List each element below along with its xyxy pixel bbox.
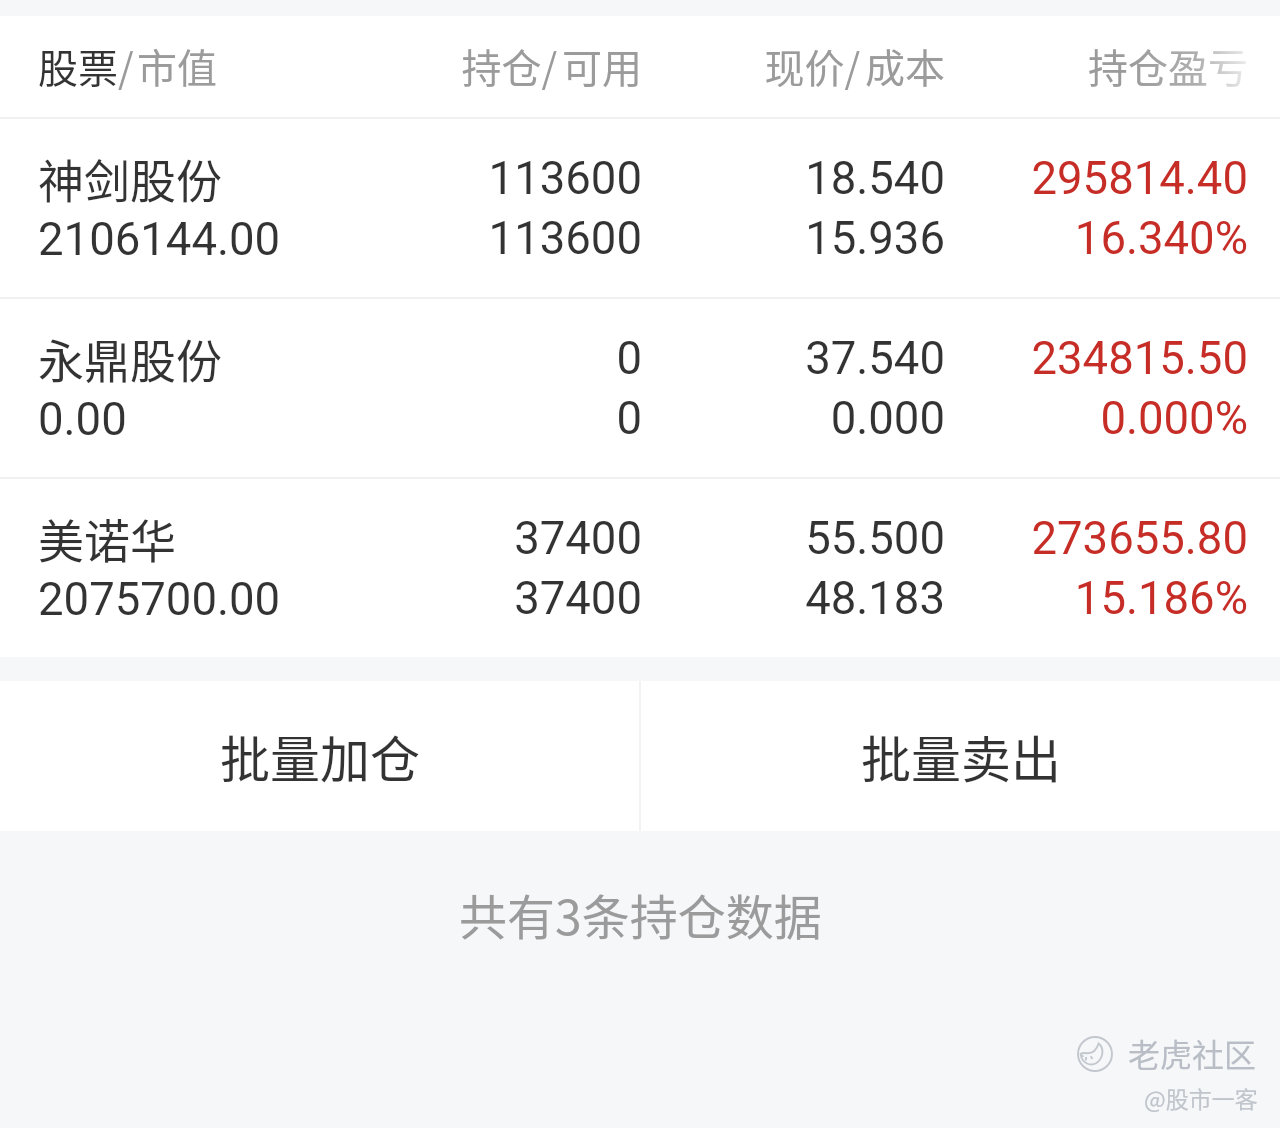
staticText: 113600 (2, 212, 642, 265)
staticText: @股市一客 (1144, 1081, 1258, 1114)
staticText: 37400 (2, 572, 642, 625)
staticText: 295814.40 (608, 152, 1248, 205)
staticText: 2075700.00 (38, 573, 281, 626)
staticText: 37.540 (305, 332, 945, 385)
staticText: 神剑股份 (38, 145, 222, 212)
staticText: 15.936 (305, 212, 945, 265)
staticText: 0 (2, 392, 642, 445)
staticText: 0.00 (38, 393, 127, 446)
staticText: 0.000% (608, 392, 1248, 445)
staticText: 113600 (2, 152, 642, 205)
other: Tiger community logo (1077, 1036, 1113, 1072)
button[interactable]: 美诺华 (0, 479, 1280, 657)
button[interactable]: 批量加仓 (0, 681, 639, 831)
staticText: 15.186% (608, 572, 1248, 625)
staticText: 老虎社区 (1128, 1030, 1257, 1076)
button[interactable]: 永鼎股份 (0, 299, 1280, 477)
staticText: 234815.50 (608, 332, 1248, 385)
staticText: 持仓盈亏 (608, 37, 1248, 95)
button[interactable]: 股票/市值 (0, 16, 1280, 117)
staticText: 美诺华 (38, 505, 176, 572)
staticText: 永鼎股份 (38, 325, 222, 392)
staticText: 2106144.00 (38, 213, 281, 266)
button[interactable]: 神剑股份 (0, 119, 1280, 297)
staticText: 37400 (2, 512, 642, 565)
staticText: 48.183 (305, 572, 945, 625)
button[interactable]: 批量卖出 (641, 681, 1280, 831)
staticText: 批量加仓 (220, 720, 420, 792)
staticText: 股票/市值 (38, 37, 217, 95)
staticText: 现价/成本 (305, 37, 945, 95)
staticText: 共有3条持仓数据 (459, 879, 822, 949)
staticText: 0 (2, 332, 642, 385)
staticText: 0.000 (305, 392, 945, 445)
staticText: 16.340% (608, 212, 1248, 265)
staticText: 55.500 (305, 512, 945, 565)
staticText: 18.540 (305, 152, 945, 205)
staticText: 批量卖出 (861, 720, 1061, 792)
staticText: 持仓/可用 (2, 37, 642, 95)
staticText: 273655.80 (608, 512, 1248, 565)
